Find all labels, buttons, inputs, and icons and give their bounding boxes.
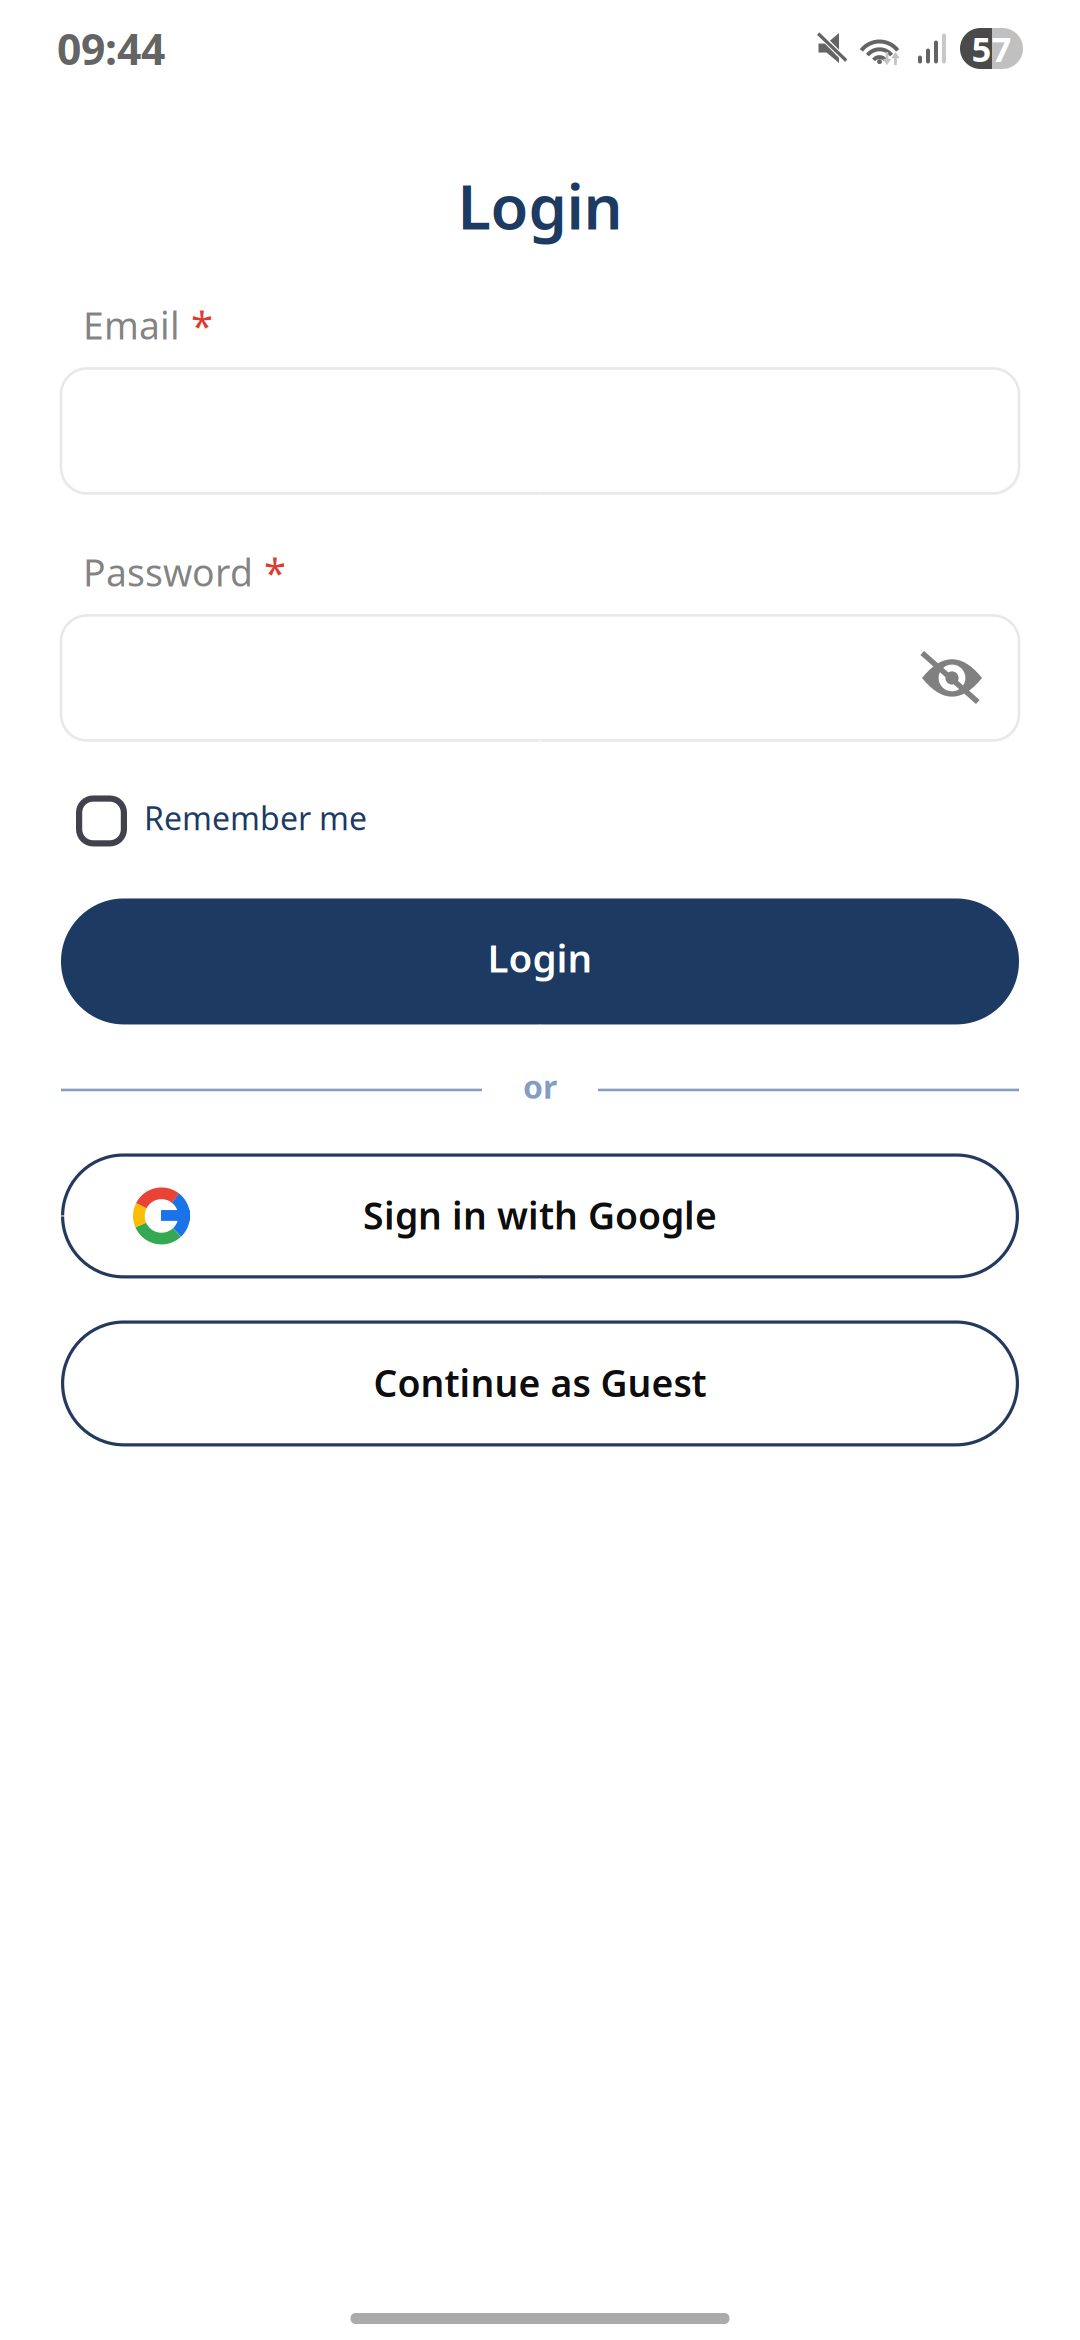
button[interactable]: Sign in with Google [61,1153,1019,1278]
staticText: Continue as Guest [373,1358,706,1407]
staticText: Login [457,165,622,246]
button[interactable]: Remember me [61,792,1019,843]
staticText: 57 [971,25,1011,71]
staticText: Sign in with Google [363,1190,717,1240]
staticText: * [264,545,286,598]
staticText: Password [83,547,253,597]
staticText: or [523,1065,557,1108]
button[interactable]: Continue as Guest [61,1320,1019,1446]
button[interactable]: Login [61,898,1019,1024]
staticText: * [191,298,213,351]
button[interactable]: Show password [885,615,1019,740]
staticText: Login [487,932,592,983]
staticText: Remember me [144,797,367,839]
staticText: 09:44 [57,20,165,77]
staticText: Email [83,300,180,350]
